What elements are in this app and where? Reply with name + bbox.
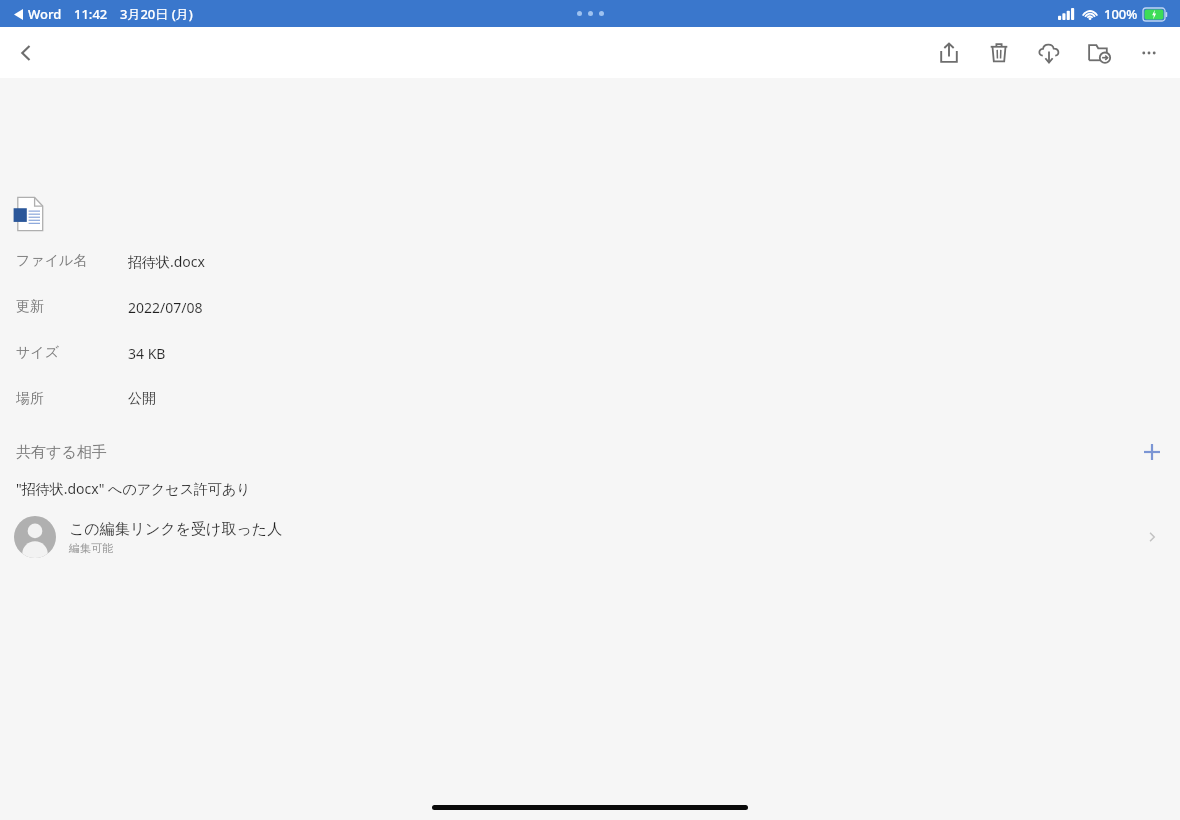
- staticText: 更新: [16, 298, 128, 315]
- staticText: 編集可能: [69, 541, 113, 555]
- staticText: 100%: [1104, 5, 1138, 23]
- staticText: 11:42: [74, 5, 108, 23]
- staticText: サイズ: [16, 344, 128, 361]
- button[interactable]: Share: [927, 31, 971, 75]
- staticText: "招待状.docx" へのアクセス許可あり: [16, 479, 251, 498]
- button[interactable]: Add people: [1130, 435, 1174, 469]
- staticText: 場所: [16, 390, 128, 407]
- button[interactable]: Back: [4, 31, 48, 75]
- button[interactable]: Download: [1027, 31, 1071, 75]
- staticText: ファイル名: [16, 252, 128, 269]
- staticText: 34 KB: [128, 344, 166, 361]
- staticText: 招待状.docx: [128, 252, 205, 269]
- staticText: 公開: [128, 390, 156, 407]
- staticText: 2022/07/08: [128, 298, 203, 315]
- button[interactable]: この編集リンクを受け取った人: [0, 508, 1180, 566]
- staticText: Word: [28, 5, 62, 23]
- staticText: 3月20日 (月): [120, 5, 193, 23]
- button[interactable]: More options: [1127, 31, 1171, 75]
- staticText: この編集リンクを受け取った人: [69, 520, 283, 539]
- button[interactable]: Delete: [977, 31, 1021, 75]
- button[interactable]: Move: [1077, 31, 1121, 75]
- staticText: 共有する相手: [16, 443, 107, 462]
